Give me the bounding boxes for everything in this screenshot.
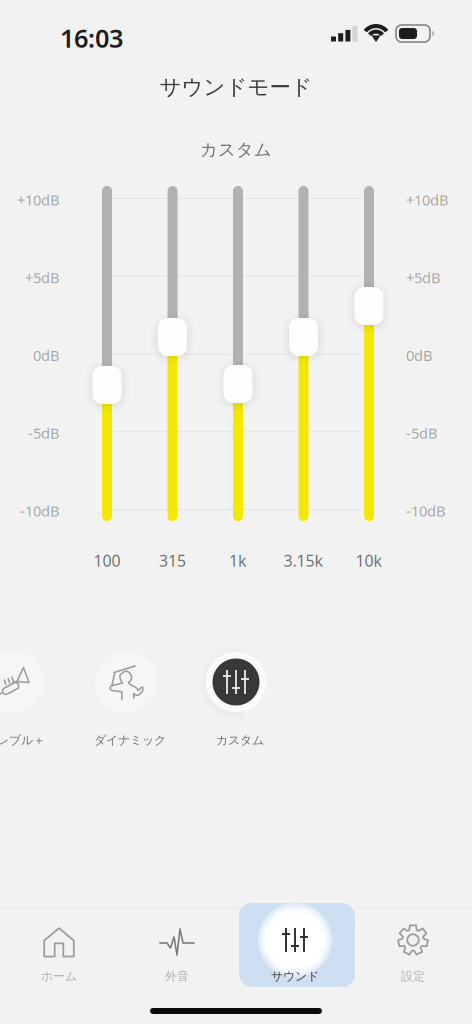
button[interactable]: サウンド	[236, 911, 354, 995]
staticText: 設定	[401, 969, 425, 984]
staticText: -5dB	[28, 423, 60, 443]
staticText: -5dB	[406, 423, 438, 443]
staticText: 外音	[165, 969, 189, 984]
staticText: 10k	[355, 550, 382, 571]
staticText: +5dB	[406, 268, 441, 287]
staticText: +10dB	[406, 190, 449, 209]
button[interactable]: 設定	[354, 911, 472, 995]
staticText: カスタム	[216, 733, 264, 748]
staticText: +5dB	[25, 268, 60, 287]
staticText: 16:03	[60, 21, 123, 55]
staticText: 100	[93, 550, 120, 571]
staticText: 0dB	[33, 345, 60, 365]
staticText: 315	[159, 550, 186, 571]
staticText: サウンド	[271, 969, 319, 984]
staticText: ホーム	[41, 969, 77, 984]
staticText: 1k	[229, 550, 247, 571]
staticText: ダイナミック	[94, 733, 166, 748]
staticText: 3.15k	[283, 550, 323, 571]
staticText: -10dB	[406, 501, 446, 520]
button[interactable]: ホーム	[0, 911, 118, 995]
staticText: レブル＋	[0, 733, 45, 748]
staticText: -10dB	[20, 501, 60, 520]
button[interactable]: カスタム	[174, 651, 298, 773]
staticText: カスタム	[200, 139, 272, 160]
button[interactable]: レブル＋	[0, 651, 100, 773]
staticText: +10dB	[17, 190, 60, 209]
button[interactable]: 外音	[118, 911, 236, 995]
staticText: 0dB	[406, 345, 433, 365]
staticText: サウンドモード	[159, 74, 312, 100]
button[interactable]: ダイナミック	[64, 651, 188, 773]
